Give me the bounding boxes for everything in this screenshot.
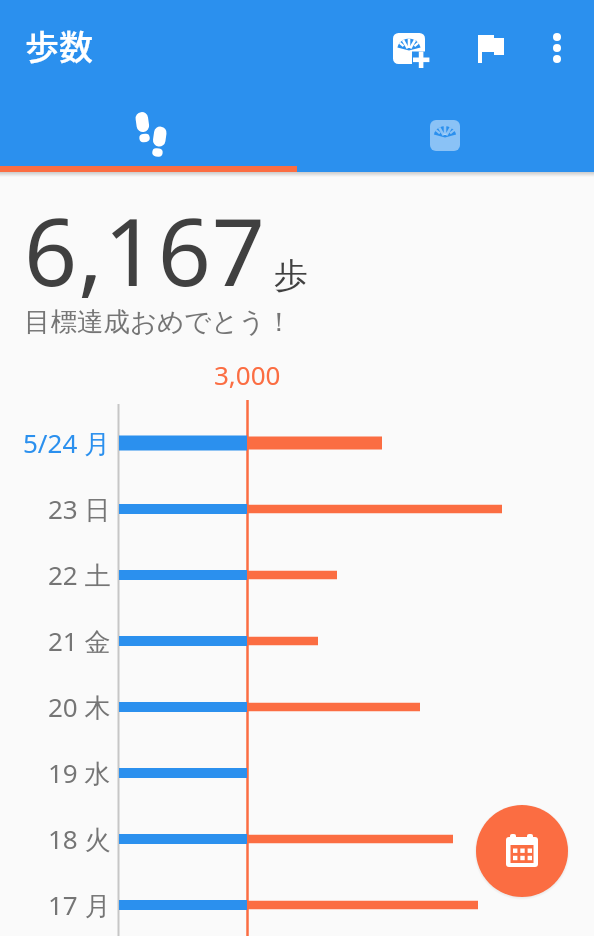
staticText: 23 日 [48,491,111,527]
staticText: 5/24 月 [23,425,111,461]
staticText: 歩数 [25,21,93,70]
staticText: 18 火 [48,821,111,857]
button[interactable] [0,96,297,172]
staticText: 19 水 [48,755,111,791]
button[interactable] [533,24,581,72]
staticText: 6,167 [24,187,266,314]
button[interactable] [384,24,432,72]
staticText: 20 木 [48,689,111,725]
button[interactable] [297,96,594,172]
staticText: 21 金 [48,623,111,659]
staticText: 17 月 [48,887,111,923]
staticText: 3,000 [214,357,281,392]
staticText: 歩 [274,254,308,297]
button[interactable] [465,24,513,72]
button[interactable] [476,805,568,897]
staticText: 22 土 [48,557,111,593]
staticText: 目標達成おめでとう！ [24,305,293,338]
